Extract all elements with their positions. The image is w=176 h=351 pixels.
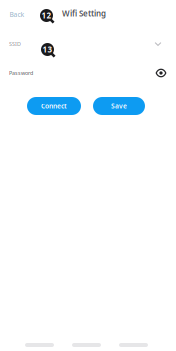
- button[interactable]: Back: [6, 8, 28, 21]
- button[interactable]: Choose network: [150, 37, 166, 51]
- staticText: Connect: [41, 102, 67, 110]
- staticText: 13: [42, 44, 52, 55]
- button[interactable]: Save: [93, 97, 145, 115]
- staticText: 12: [41, 10, 51, 21]
- staticText: Password: [9, 69, 33, 77]
- button[interactable]: Show password: [153, 66, 169, 80]
- button[interactable]: Connect: [27, 97, 81, 115]
- staticText: Back: [9, 10, 24, 19]
- staticText: Wifi Setting: [62, 8, 106, 19]
- staticText: SSID: [9, 40, 21, 48]
- staticText: Save: [111, 102, 127, 110]
